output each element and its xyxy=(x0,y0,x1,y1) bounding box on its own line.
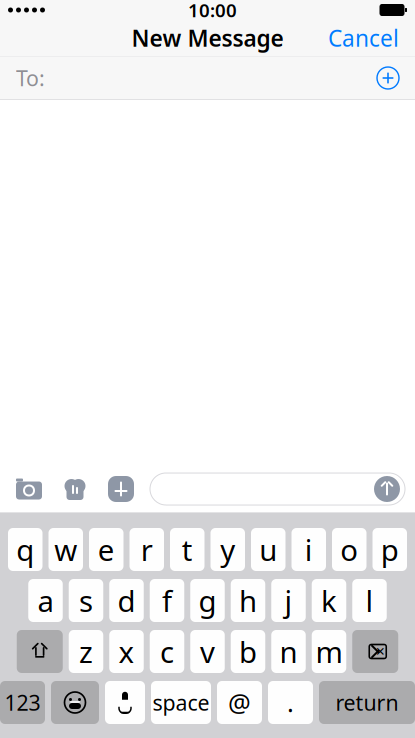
staticText: f xyxy=(162,581,172,620)
button[interactable]: o xyxy=(332,528,366,571)
button[interactable]: v xyxy=(190,630,225,673)
button[interactable]: i xyxy=(291,528,326,571)
staticText: . xyxy=(287,686,294,719)
button[interactable]: w xyxy=(48,528,83,571)
button[interactable]: Send xyxy=(372,474,402,504)
staticText: e xyxy=(98,530,115,569)
staticText: q xyxy=(16,530,34,569)
button[interactable]: g xyxy=(190,579,225,622)
staticText: @ xyxy=(228,686,251,719)
staticText: To: xyxy=(16,64,45,92)
staticText: s xyxy=(79,581,93,620)
staticText: t xyxy=(182,530,193,569)
staticText: n xyxy=(279,632,297,671)
button[interactable]: s xyxy=(69,579,103,622)
button[interactable]: u xyxy=(251,528,285,571)
staticText: z xyxy=(79,632,93,671)
staticText: i xyxy=(305,530,313,569)
button[interactable]: j xyxy=(271,579,306,622)
button[interactable]: f xyxy=(150,579,184,622)
staticText: c xyxy=(160,632,174,671)
staticText: x xyxy=(118,632,134,671)
button[interactable]: h xyxy=(231,579,265,622)
staticText: m xyxy=(315,632,342,671)
button[interactable]: Shift xyxy=(17,630,63,673)
staticText: r xyxy=(141,530,153,569)
button[interactable]: Cancel xyxy=(318,17,409,59)
button[interactable]: p xyxy=(372,528,407,571)
button[interactable]: e xyxy=(89,528,123,571)
staticText: a xyxy=(37,581,53,620)
staticText: j xyxy=(284,581,292,620)
button[interactable]: r xyxy=(129,528,164,571)
staticText: w xyxy=(54,530,77,569)
staticText: h xyxy=(239,581,257,620)
staticText: u xyxy=(259,530,277,569)
button[interactable]: z xyxy=(69,630,103,673)
staticText: b xyxy=(239,632,257,671)
button[interactable]: space xyxy=(151,681,211,724)
button[interactable]: Add contact xyxy=(371,61,405,95)
button[interactable]: return xyxy=(319,681,415,724)
button[interactable]: q xyxy=(8,528,42,571)
staticText: 123 xyxy=(4,688,40,717)
staticText: y xyxy=(220,530,235,569)
staticText: space xyxy=(152,688,209,717)
staticText: Cancel xyxy=(328,23,399,53)
button[interactable]: Emoji xyxy=(51,681,99,724)
button[interactable]: 123 xyxy=(0,681,45,724)
button[interactable]: y xyxy=(210,528,245,571)
button[interactable]: l xyxy=(352,579,387,622)
button[interactable]: c xyxy=(150,630,184,673)
staticText: l xyxy=(365,581,373,620)
button[interactable]: . xyxy=(268,681,313,724)
button[interactable]: a xyxy=(28,579,63,622)
button[interactable]: b xyxy=(231,630,265,673)
button[interactable]: Digital Touch xyxy=(52,469,98,509)
staticText: o xyxy=(340,530,358,569)
staticText: return xyxy=(335,688,398,717)
button[interactable]: n xyxy=(271,630,306,673)
button[interactable]: Delete xyxy=(352,630,398,673)
staticText: p xyxy=(381,530,399,569)
button[interactable]: @ xyxy=(217,681,262,724)
staticText: k xyxy=(321,581,337,620)
button[interactable]: Dictation xyxy=(105,681,145,724)
button[interactable]: App Store xyxy=(98,469,144,509)
staticText: d xyxy=(117,581,135,620)
button[interactable]: d xyxy=(109,579,144,622)
button[interactable]: m xyxy=(312,630,346,673)
button[interactable]: k xyxy=(312,579,346,622)
staticText: New Message xyxy=(131,23,283,53)
staticText: ✕ xyxy=(375,645,385,658)
button[interactable]: Camera xyxy=(6,469,52,509)
staticText: 10:00 xyxy=(188,0,237,22)
staticText: g xyxy=(198,581,216,620)
staticText: v xyxy=(200,632,215,671)
button[interactable]: t xyxy=(170,528,204,571)
button[interactable]: x xyxy=(109,630,144,673)
